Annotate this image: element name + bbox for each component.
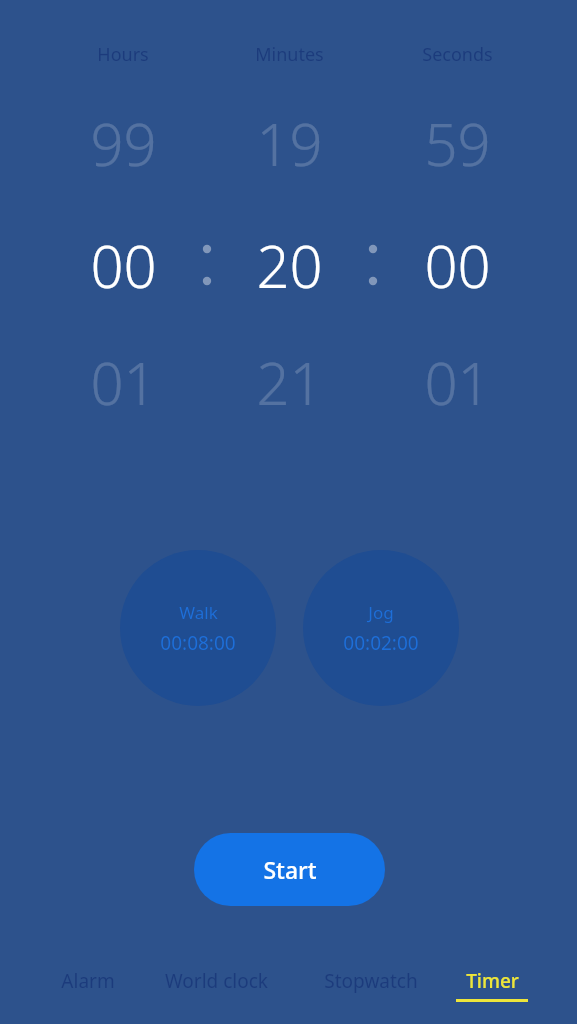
staticText: 00:02:00 bbox=[343, 630, 419, 656]
staticText: 20 bbox=[256, 226, 323, 305]
staticText: 00 bbox=[90, 226, 157, 305]
staticText: 01 bbox=[90, 343, 157, 422]
staticText: Timer bbox=[466, 968, 519, 994]
staticText: Seconds bbox=[422, 42, 493, 67]
button[interactable]: Jog bbox=[303, 550, 459, 706]
button[interactable]: 00 bbox=[38, 219, 208, 311]
staticText: Minutes bbox=[255, 42, 324, 67]
button[interactable]: Increase bbox=[372, 97, 542, 189]
staticText: Walk bbox=[179, 601, 218, 624]
button[interactable]: Increase bbox=[204, 97, 374, 189]
button[interactable]: Timer bbox=[417, 968, 567, 1016]
staticText: Start bbox=[263, 854, 317, 885]
staticText: Stopwatch bbox=[324, 968, 418, 994]
staticText: 01 bbox=[424, 343, 491, 422]
button[interactable]: Walk bbox=[120, 550, 276, 706]
button[interactable]: Stopwatch bbox=[296, 968, 446, 1016]
staticText: 99 bbox=[90, 104, 157, 183]
button[interactable]: 00 bbox=[372, 219, 542, 311]
button[interactable]: Start bbox=[194, 833, 385, 906]
staticText: 59 bbox=[424, 104, 491, 183]
button[interactable]: World clock bbox=[141, 968, 291, 1016]
staticText: World clock bbox=[165, 968, 268, 994]
button[interactable]: Decrease bbox=[372, 336, 542, 428]
staticText: 21 bbox=[256, 343, 323, 422]
staticText: 00:08:00 bbox=[160, 630, 236, 656]
staticText: 00 bbox=[424, 226, 491, 305]
button[interactable]: Increase bbox=[38, 97, 208, 189]
button[interactable]: 20 bbox=[204, 219, 374, 311]
button[interactable]: Decrease bbox=[204, 336, 374, 428]
staticText: Hours bbox=[97, 42, 149, 67]
staticText: 19 bbox=[256, 104, 323, 183]
button[interactable]: Decrease bbox=[38, 336, 208, 428]
staticText: Alarm bbox=[61, 968, 115, 994]
staticText: Jog bbox=[368, 601, 394, 624]
button[interactable]: Alarm bbox=[13, 968, 163, 1016]
